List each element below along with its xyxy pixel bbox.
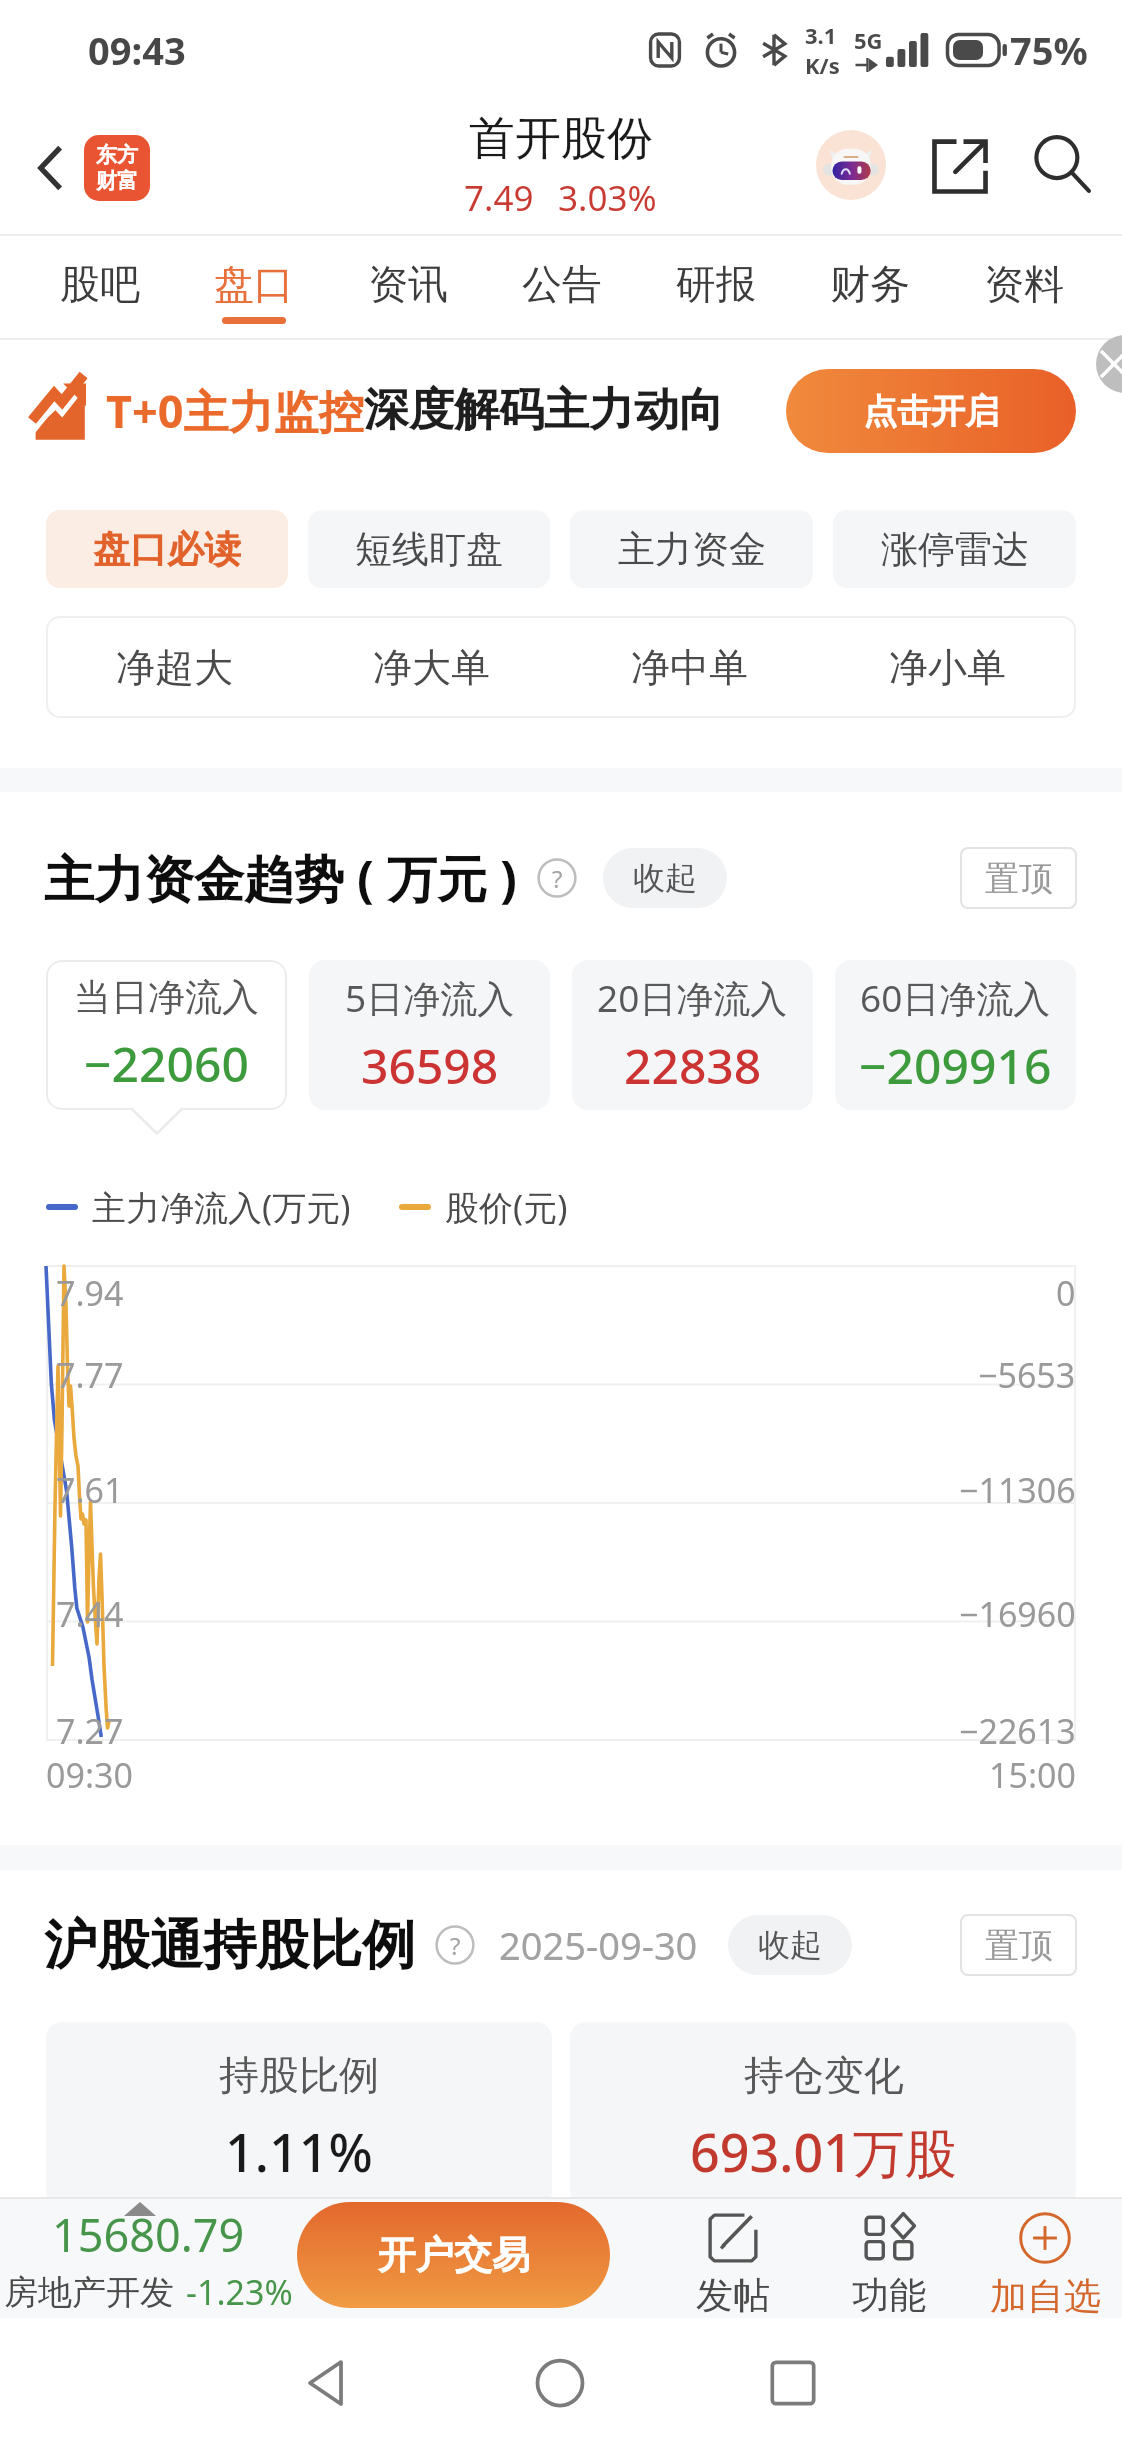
button[interactable]: 主力资金 — [570, 510, 813, 588]
staticText: 净大单 — [373, 643, 490, 692]
staticText: 持股比例 — [219, 2050, 379, 2100]
staticText: 财富 — [96, 168, 138, 194]
staticText: ? — [450, 1929, 461, 1962]
button[interactable]: 点击开启 — [786, 369, 1076, 453]
button[interactable]: 发帖 — [655, 2197, 811, 2318]
button[interactable]: 功能 — [811, 2197, 967, 2318]
button[interactable]: East Money — [84, 135, 150, 201]
staticText: 15:00 — [989, 1752, 1076, 1798]
staticText: 财务 — [830, 259, 910, 309]
button[interactable]: 收起 — [603, 848, 727, 908]
staticText: 当日净流入 — [74, 974, 259, 1021]
button[interactable]: 15680.79 — [0, 2204, 297, 2315]
button[interactable]: 公告 — [514, 236, 610, 340]
button[interactable]: Share — [920, 126, 1000, 206]
button[interactable]: AI assistant — [816, 130, 886, 200]
staticText: 净中单 — [631, 643, 748, 692]
staticText: 功能 — [852, 2272, 926, 2319]
staticText: 股吧 — [60, 259, 140, 309]
staticText: 首开股份 — [469, 110, 653, 168]
staticText: 深度解码主力动向 — [364, 382, 724, 439]
button[interactable]: 股吧 — [52, 236, 148, 340]
staticText: 沪股通持股比例 — [44, 1912, 415, 1979]
staticText: 75% — [1010, 24, 1088, 76]
staticText: 净超大 — [116, 643, 233, 692]
staticText: 置顶 — [985, 1924, 1053, 1967]
staticText: 收起 — [758, 1925, 822, 1965]
staticText: 7.49 — [464, 174, 534, 222]
staticText: 主力资金趋势 ( 万元 ) — [44, 844, 517, 912]
staticText: 加自选 — [990, 2273, 1101, 2320]
button[interactable]: 研报 — [668, 236, 764, 340]
staticText: K/s — [805, 50, 840, 80]
staticText: 15680.79 — [52, 2204, 245, 2265]
button[interactable]: 置顶 — [960, 847, 1077, 909]
staticText: 净小单 — [889, 643, 1006, 692]
staticText: 60日净流入 — [860, 972, 1051, 1023]
staticText: 7.77 — [56, 1352, 124, 1396]
staticText: 置顶 — [985, 857, 1053, 900]
staticText: 09:43 — [88, 24, 186, 76]
button[interactable]: 净超大 — [46, 616, 303, 718]
staticText: 3.1 — [805, 20, 837, 50]
button[interactable]: 开户交易 — [297, 2202, 610, 2308]
staticText: −16960 — [959, 1591, 1076, 1635]
button[interactable]: 财务 — [822, 236, 918, 340]
button[interactable]: 盘口必读 — [46, 510, 288, 588]
button[interactable]: 收起 — [728, 1915, 852, 1975]
button[interactable]: 20日净流入 — [572, 960, 813, 1110]
button[interactable]: 盘口 — [206, 236, 302, 340]
staticText: 收起 — [633, 858, 697, 898]
button[interactable]: Info — [435, 1925, 475, 1965]
button[interactable]: 短线盯盘 — [308, 510, 550, 588]
button[interactable]: 置顶 — [960, 1914, 1077, 1976]
staticText: 09:30 — [46, 1752, 133, 1798]
staticText: 资料 — [984, 259, 1064, 309]
button[interactable]: 净大单 — [303, 616, 560, 718]
staticText: -1.23% — [186, 2269, 293, 2315]
button[interactable]: 净小单 — [818, 616, 1076, 718]
staticText: 7.94 — [56, 1270, 124, 1314]
button[interactable]: Recent apps — [748, 2338, 838, 2428]
staticText: 房地产开发 — [4, 2271, 174, 2314]
staticText: 盘口必读 — [93, 526, 241, 573]
button[interactable]: Info — [537, 858, 577, 898]
staticText: 22838 — [624, 1033, 762, 1098]
button[interactable]: 净中单 — [560, 616, 818, 718]
button[interactable]: 资讯 — [360, 236, 456, 340]
button[interactable]: Back — [281, 2338, 371, 2428]
button[interactable]: Back — [14, 132, 86, 204]
button[interactable]: Search — [1020, 122, 1104, 206]
staticText: 7.44 — [56, 1591, 124, 1635]
button[interactable]: Close ad — [1096, 335, 1122, 393]
staticText: 1.11% — [225, 2116, 373, 2187]
button[interactable]: 资料 — [976, 236, 1072, 340]
staticText: 开户交易 — [378, 2231, 530, 2279]
staticText: 发帖 — [696, 2272, 770, 2319]
button[interactable]: 持仓变化 — [570, 2022, 1076, 2207]
button[interactable]: 60日净流入 — [835, 960, 1076, 1110]
button[interactable]: 持股比例 — [46, 2022, 552, 2207]
staticText: 5G — [854, 25, 883, 55]
button[interactable]: Home — [515, 2338, 605, 2428]
button[interactable]: 加自选 — [967, 2197, 1122, 2318]
staticText: 3.03% — [558, 174, 657, 222]
staticText: 点击开启 — [863, 390, 999, 433]
staticText: 股价(元) — [445, 1184, 568, 1230]
staticText: −22613 — [959, 1708, 1076, 1752]
staticText: −209916 — [859, 1033, 1052, 1098]
button[interactable]: 当日净流入 — [46, 960, 287, 1110]
staticText: 研报 — [676, 259, 756, 309]
staticText: T+0主力监控 — [106, 380, 364, 441]
staticText: 693.01万股 — [690, 2116, 957, 2187]
staticText: −22060 — [84, 1031, 249, 1096]
staticText: 0 — [1056, 1270, 1076, 1314]
button[interactable]: 涨停雷达 — [833, 510, 1076, 588]
button[interactable]: 5日净流入 — [309, 960, 550, 1110]
staticText: 持仓变化 — [744, 2050, 904, 2100]
staticText: 短线盯盘 — [355, 526, 503, 573]
staticText: 7.27 — [56, 1708, 124, 1752]
staticText: −11306 — [959, 1467, 1076, 1511]
staticText: 涨停雷达 — [881, 526, 1029, 573]
staticText: 主力资金 — [618, 526, 766, 573]
